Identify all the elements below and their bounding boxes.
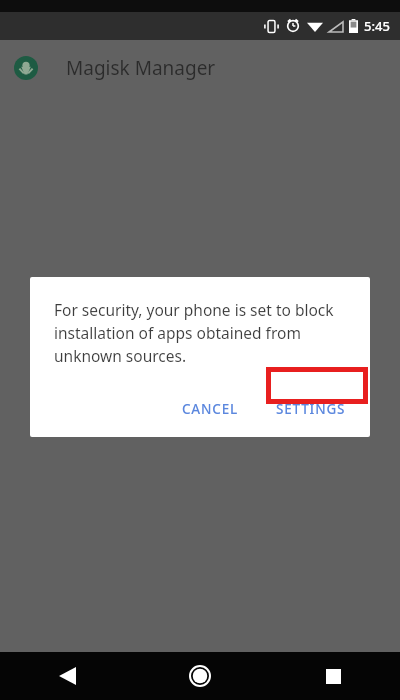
staticText: 5:45 (364, 17, 390, 35)
button[interactable]: Recent apps (309, 652, 357, 700)
staticText: For security, your phone is set to block… (54, 299, 348, 367)
staticText: SETTINGS (276, 400, 346, 418)
button[interactable]: Home (176, 652, 224, 700)
button[interactable]: Back (43, 652, 91, 700)
staticText: Magisk Manager (66, 55, 216, 81)
staticText: CANCEL (182, 400, 238, 418)
button[interactable]: CANCEL (170, 389, 250, 429)
button[interactable]: SETTINGS (260, 389, 370, 429)
